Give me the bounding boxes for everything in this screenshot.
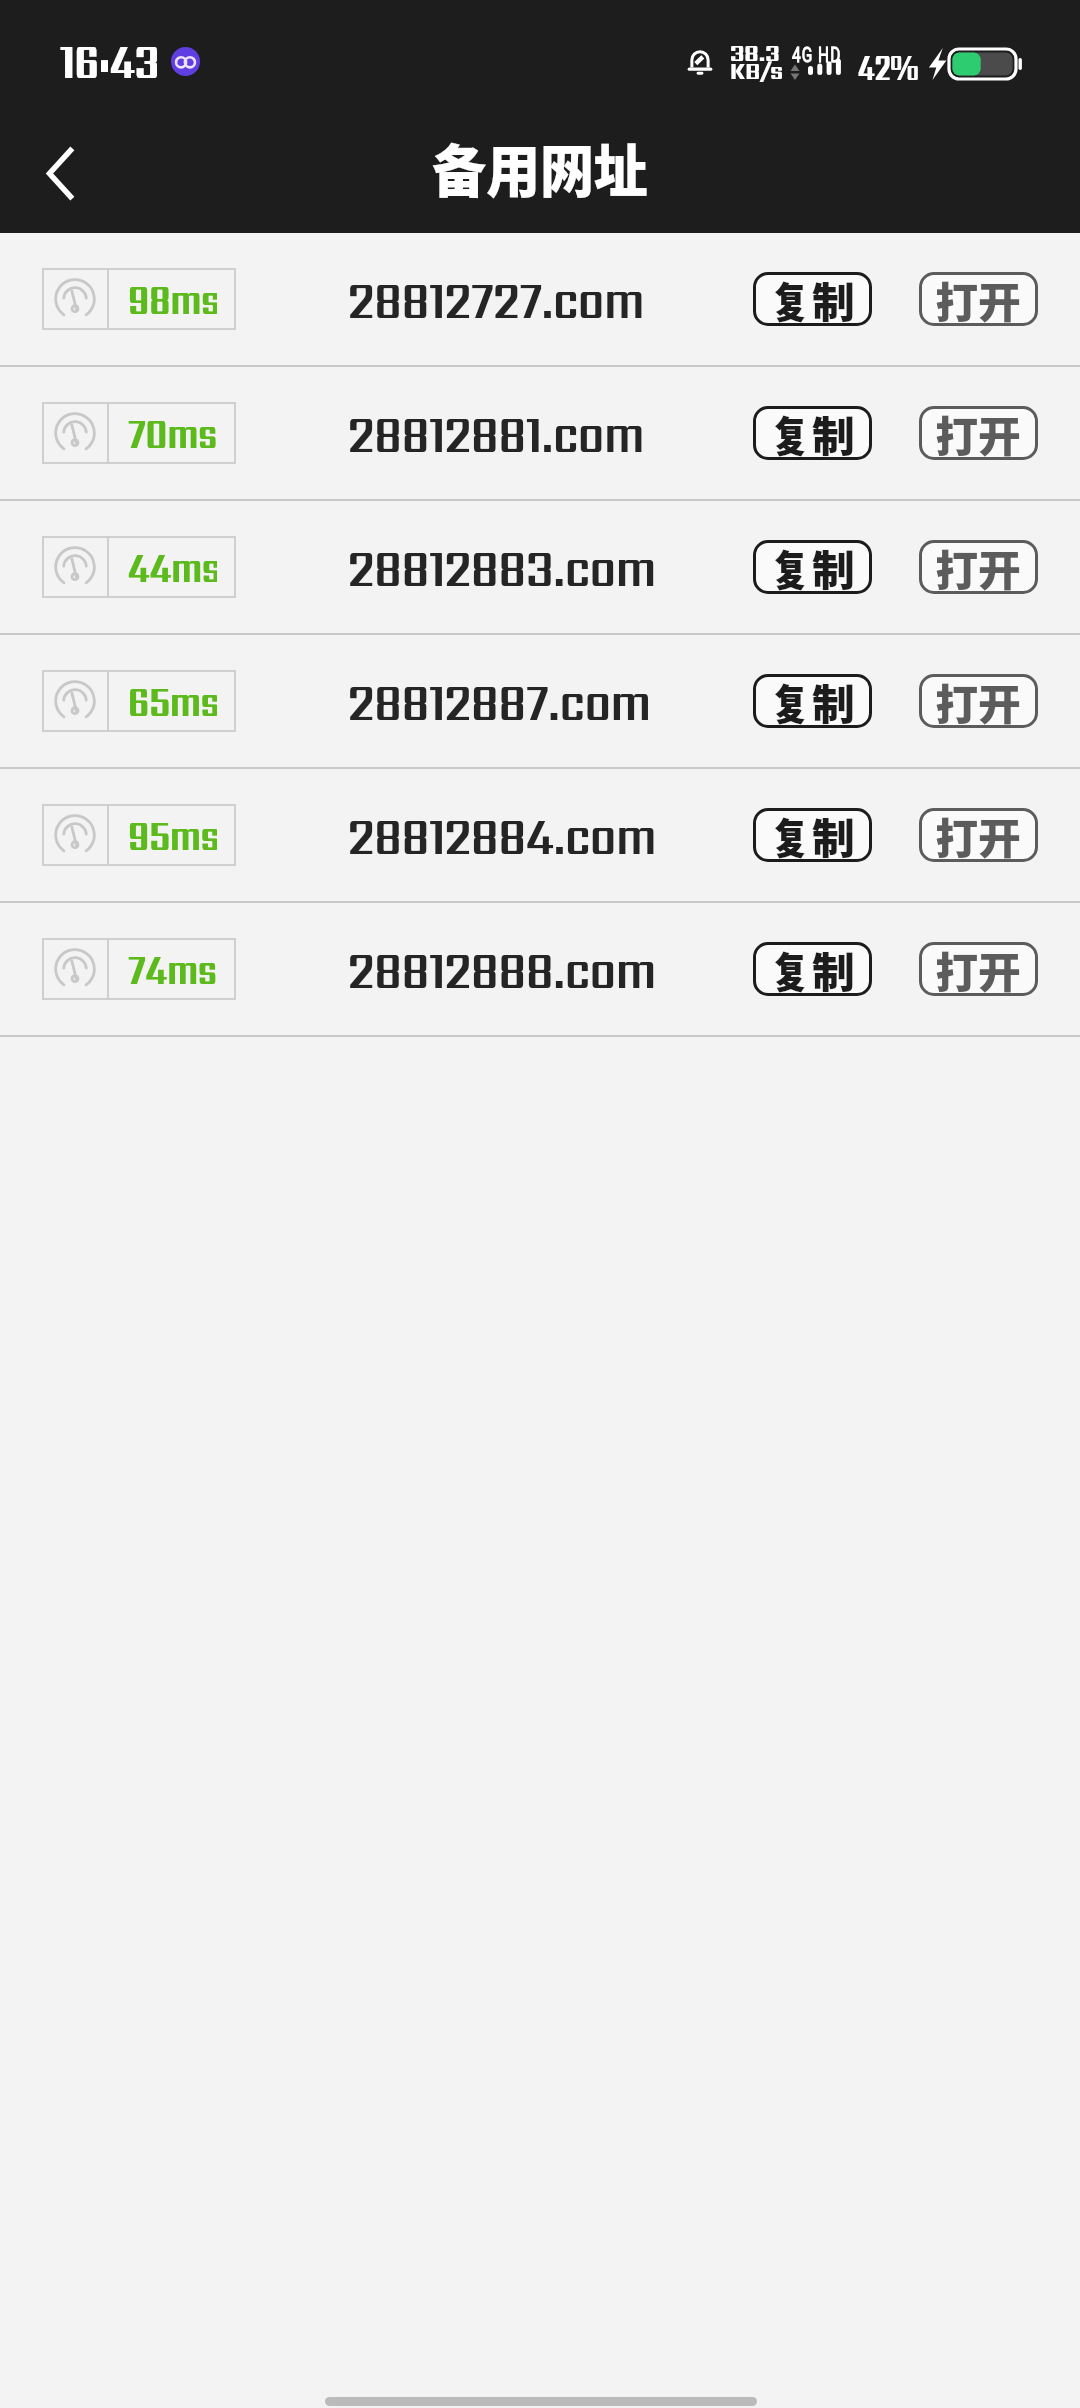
staticText: 95ms (128, 804, 217, 866)
staticText: 复制 (769, 537, 856, 598)
button[interactable]: 打开 (919, 406, 1038, 460)
button[interactable]: 44ms (0, 501, 1080, 633)
button[interactable]: 打开 (919, 674, 1038, 728)
staticText: 复制 (769, 269, 856, 330)
staticText: 打开 (935, 671, 1022, 732)
button[interactable]: 65ms (0, 635, 1080, 767)
button[interactable]: 打开 (919, 272, 1038, 326)
staticText: 复制 (769, 939, 856, 1000)
button[interactable]: 复制 (753, 808, 872, 862)
staticText: 打开 (935, 537, 1022, 598)
staticText: 28812884.com (348, 797, 656, 873)
staticText: 打开 (935, 805, 1022, 866)
staticText: 复制 (769, 403, 856, 464)
staticText: 70ms (128, 402, 217, 464)
staticText: 打开 (935, 269, 1022, 330)
button[interactable]: 70ms (0, 367, 1080, 499)
button[interactable]: 打开 (919, 808, 1038, 862)
staticText: 28812727.com (348, 261, 644, 337)
staticText: 4G HD (792, 43, 842, 68)
button[interactable]: 打开 (919, 540, 1038, 594)
staticText: 复制 (769, 805, 856, 866)
staticText: 44ms (128, 536, 217, 598)
staticText: 42% (858, 40, 919, 93)
staticText: 28812881.com (348, 395, 644, 471)
staticText: 打开 (935, 939, 1022, 1000)
button[interactable]: 复制 (753, 540, 872, 594)
staticText: 打开 (935, 403, 1022, 464)
button[interactable]: 98ms (0, 233, 1080, 365)
staticText: 28812888.com (348, 931, 656, 1007)
button[interactable]: 复制 (753, 272, 872, 326)
staticText: 38.3 (730, 35, 780, 70)
staticText: 28812887.com (348, 663, 651, 739)
button[interactable]: 复制 (753, 406, 872, 460)
button[interactable]: Back (15, 128, 105, 218)
staticText: 16:43 (60, 26, 159, 96)
staticText: 74ms (128, 938, 217, 1000)
staticText: 备用网址 (432, 126, 648, 209)
staticText: 复制 (769, 671, 856, 732)
button[interactable]: 打开 (919, 942, 1038, 996)
button[interactable]: 复制 (753, 942, 872, 996)
button[interactable]: 95ms (0, 769, 1080, 901)
staticText: 65ms (128, 670, 217, 732)
staticText: 98ms (128, 268, 217, 330)
staticText: 28812883.com (348, 529, 656, 605)
button[interactable]: 74ms (0, 903, 1080, 1035)
button[interactable]: 复制 (753, 674, 872, 728)
staticText: KB/s (730, 53, 783, 88)
